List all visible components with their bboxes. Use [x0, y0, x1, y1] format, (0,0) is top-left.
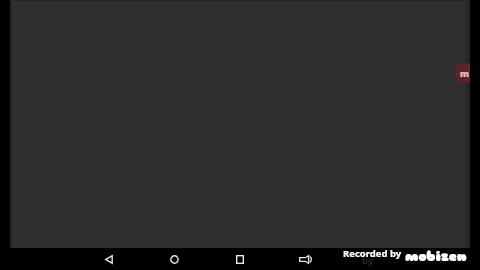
button[interactable]: Volume [290, 248, 320, 270]
staticText: mobizen [405, 248, 467, 265]
staticText: Recorded by [343, 247, 402, 260]
button[interactable]: Mobizen recorder [455, 63, 475, 83]
button[interactable]: Back [94, 248, 124, 270]
button[interactable]: Home [159, 248, 189, 270]
button[interactable]: Recent apps [225, 248, 255, 270]
staticText: by [362, 254, 374, 267]
staticText: m [460, 67, 470, 79]
